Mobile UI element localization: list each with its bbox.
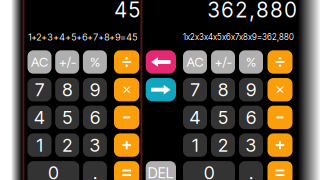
button[interactable]: 0 <box>183 161 235 180</box>
button[interactable]: 1 <box>27 133 51 157</box>
button[interactable]: Plus <box>114 133 139 157</box>
button[interactable]: % <box>239 50 263 74</box>
button[interactable]: 7 <box>27 78 51 101</box>
staticText: 8 <box>62 79 72 101</box>
staticText: 1x2x3x4x5x6x7x8x9=362,880 <box>183 32 294 42</box>
button[interactable]: Divide <box>114 50 139 74</box>
staticText: 1 <box>192 134 198 156</box>
staticText: AC <box>31 54 48 70</box>
staticText: 8 <box>218 79 228 101</box>
button[interactable]: 0 <box>27 161 79 180</box>
button[interactable]: 9 <box>83 78 107 101</box>
button[interactable]: 6 <box>239 106 263 129</box>
button[interactable]: AC <box>183 50 207 74</box>
button[interactable]: 7 <box>183 78 207 101</box>
button[interactable]: 8 <box>211 78 235 101</box>
button[interactable]: Previous <box>146 50 176 74</box>
staticText: . <box>249 162 253 180</box>
button[interactable]: Multiply <box>114 78 139 101</box>
button[interactable]: 2 <box>211 133 235 157</box>
staticText: 4 <box>34 106 45 128</box>
button[interactable]: +/- <box>211 50 235 74</box>
staticText: 2 <box>62 134 72 156</box>
button[interactable]: 9 <box>239 78 263 101</box>
staticText: % <box>90 54 100 70</box>
button[interactable]: Divide <box>267 50 292 74</box>
button[interactable]: Equals <box>267 161 292 180</box>
button[interactable]: . <box>239 161 263 180</box>
button[interactable]: 5 <box>55 106 79 129</box>
staticText: 7 <box>190 79 199 101</box>
button[interactable]: 4 <box>183 106 207 129</box>
staticText: . <box>93 162 97 180</box>
button[interactable]: Next <box>146 78 176 101</box>
staticText: 6 <box>90 106 100 128</box>
staticText: 5 <box>218 106 228 128</box>
button[interactable]: 8 <box>55 78 79 101</box>
staticText: 9 <box>246 79 256 101</box>
staticText: 5 <box>62 106 72 128</box>
staticText: 45 <box>114 0 139 22</box>
staticText: 1+2+3+4+5+6+7+8+9=45 <box>28 31 137 43</box>
staticText: +/- <box>214 54 231 70</box>
button[interactable]: 6 <box>83 106 107 129</box>
staticText: 362,880 <box>207 0 296 22</box>
staticText: % <box>246 54 256 70</box>
button[interactable]: Plus <box>267 133 292 157</box>
staticText: DEL <box>148 164 174 180</box>
button[interactable]: Minus <box>114 106 139 129</box>
button[interactable]: 1 <box>183 133 207 157</box>
button[interactable]: 3 <box>83 133 107 157</box>
button[interactable]: DEL <box>146 161 176 180</box>
button[interactable]: +/- <box>55 50 79 74</box>
staticText: 1 <box>36 134 42 156</box>
button[interactable]: 2 <box>55 133 79 157</box>
staticText: AC <box>186 54 203 70</box>
button[interactable]: Multiply <box>267 78 292 101</box>
staticText: 3 <box>89 134 100 156</box>
staticText: +/- <box>59 54 76 70</box>
staticText: 2 <box>218 134 228 156</box>
button[interactable]: . <box>83 161 107 180</box>
staticText: 6 <box>246 106 256 128</box>
button[interactable]: 3 <box>239 133 263 157</box>
staticText: 9 <box>90 79 100 101</box>
staticText: 7 <box>35 79 44 101</box>
button[interactable]: % <box>83 50 107 74</box>
staticText: 3 <box>245 134 256 156</box>
button[interactable]: AC <box>27 50 51 74</box>
staticText: 0 <box>48 162 58 180</box>
staticText: 0 <box>204 162 214 180</box>
button[interactable]: 4 <box>27 106 51 129</box>
button[interactable]: Minus <box>267 106 292 129</box>
button[interactable]: 5 <box>211 106 235 129</box>
button[interactable]: Equals <box>114 161 139 180</box>
staticText: 4 <box>189 106 200 128</box>
